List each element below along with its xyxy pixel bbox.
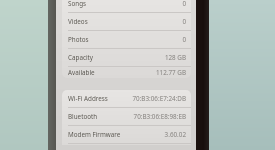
button[interactable]: Wi-Fi Address [62, 90, 191, 107]
staticText: Capacity [68, 53, 94, 62]
button[interactable]: Photos [62, 31, 191, 48]
staticText: 0 [182, 35, 186, 44]
button[interactable]: Bluetooth [62, 108, 191, 125]
button[interactable]: Available [62, 67, 191, 78]
staticText: 128 GB [164, 53, 186, 62]
staticText: 70:B3:06:E8:98:EB [133, 112, 186, 121]
staticText: Photos [68, 35, 89, 44]
staticText: Bluetooth [68, 112, 98, 121]
staticText: Modem Firmware [68, 130, 121, 139]
button[interactable]: Songs [62, 0, 191, 12]
button[interactable]: Videos [62, 13, 191, 30]
staticText: 3.60.02 [164, 130, 186, 139]
staticText: 0 [182, 17, 186, 26]
staticText: 70:B3:06:E7:24:DB [132, 94, 186, 103]
staticText: Songs [68, 0, 87, 8]
staticText: Wi-Fi Address [68, 94, 108, 103]
staticText: 0 [182, 0, 186, 8]
button[interactable]: Capacity [62, 49, 191, 66]
button[interactable]: Modem Firmware [62, 126, 191, 143]
staticText: Available [68, 68, 95, 77]
staticText: Videos [68, 17, 88, 26]
staticText: 112.77 GB [155, 68, 186, 77]
